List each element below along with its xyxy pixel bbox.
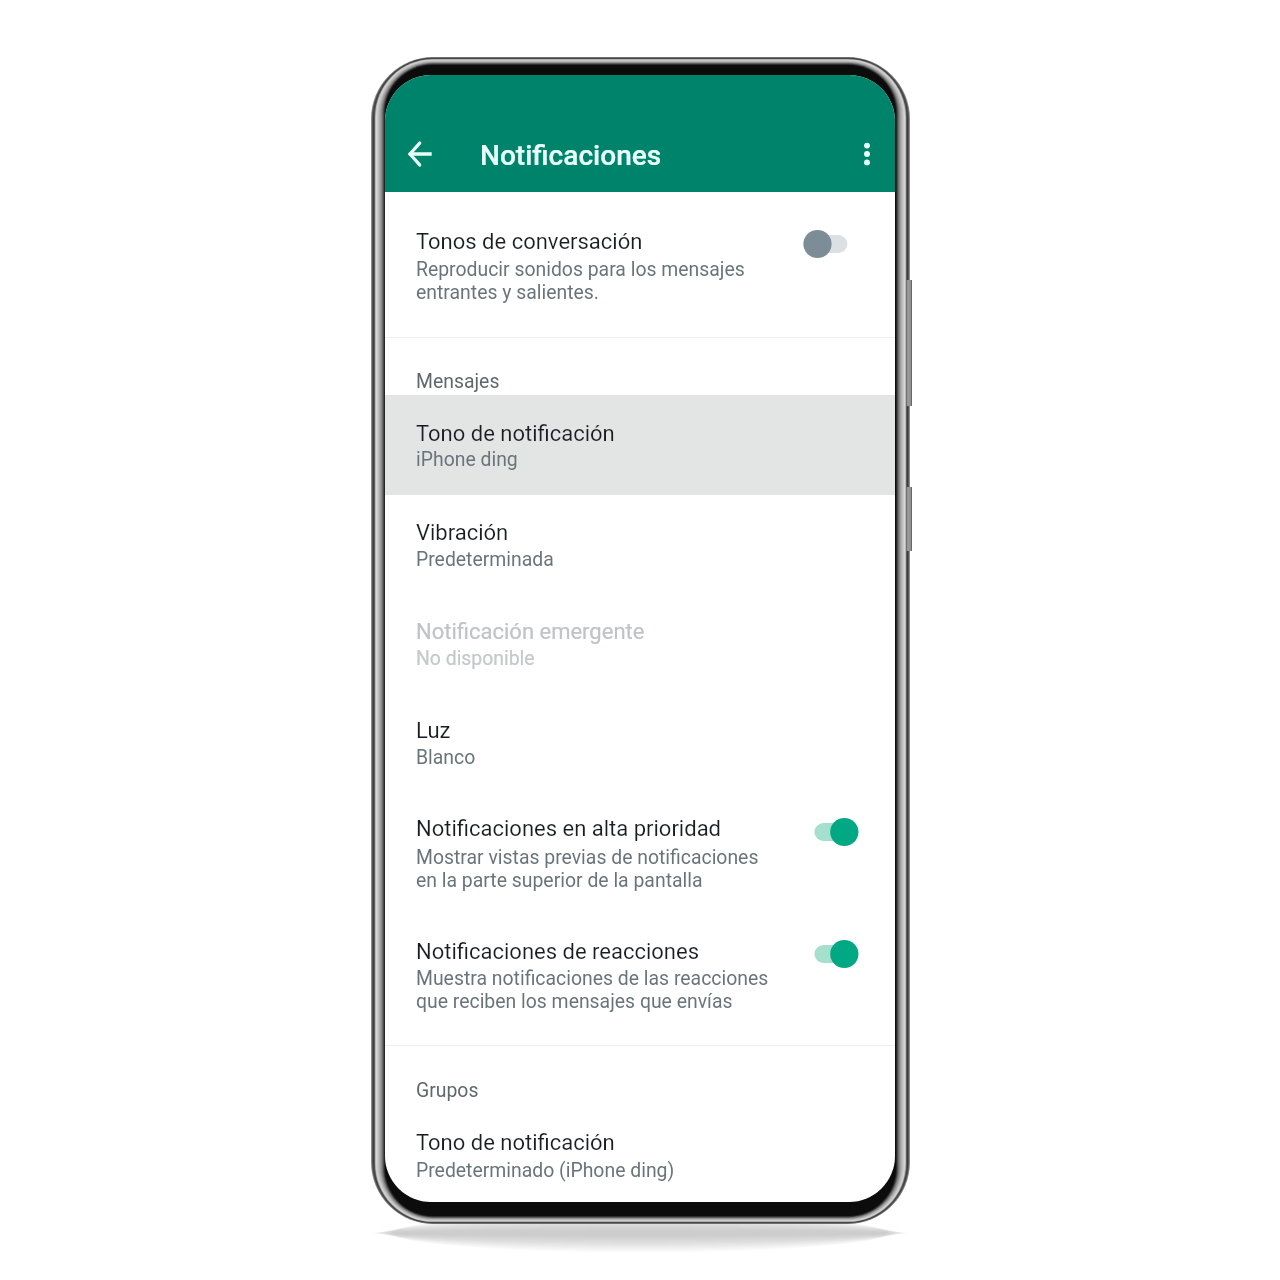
staticText: No disponible: [416, 647, 535, 670]
button[interactable]: Switch off: [789, 222, 863, 266]
button[interactable]: Tonos de conversación: [385, 192, 895, 337]
staticText: Predeterminada: [416, 548, 554, 571]
button[interactable]: More options: [838, 125, 895, 183]
staticText: Mostrar vistas previas de notificaciones…: [416, 846, 759, 892]
staticText: iPhone ding: [416, 448, 518, 471]
button[interactable]: Switch on: [789, 932, 863, 976]
button[interactable]: Switch on: [789, 810, 863, 854]
staticText: Notificaciones en alta prioridad: [416, 816, 722, 842]
staticText: Notificación emergente: [416, 619, 645, 645]
button[interactable]: Notificaciones de reacciones: [385, 910, 895, 1045]
staticText: Luz: [416, 718, 451, 744]
staticText: Blanco: [416, 746, 476, 769]
button[interactable]: Back: [391, 125, 449, 183]
staticText: Muestra notificaciones de las reacciones…: [416, 967, 769, 1013]
staticText: Predeterminado (iPhone ding): [416, 1159, 675, 1182]
button[interactable]: Notificación emergente: [385, 594, 895, 693]
staticText: Vibración: [416, 520, 509, 546]
staticText: Reproducir sonidos para los mensajes ent…: [416, 258, 745, 304]
staticText: Tono de notificación: [416, 1130, 615, 1156]
staticText: Notificaciones: [480, 139, 662, 172]
button[interactable]: Luz: [385, 693, 895, 792]
staticText: Notificaciones de reacciones: [416, 939, 700, 965]
staticText: Tono de notificación: [416, 421, 615, 447]
button[interactable]: Notificaciones en alta prioridad: [385, 792, 895, 910]
button[interactable]: Tono de notificación: [385, 395, 895, 495]
button[interactable]: Tono de notificación: [385, 1104, 895, 1202]
button[interactable]: Vibración: [385, 495, 895, 594]
staticText: Grupos: [416, 1079, 479, 1102]
staticText: Tonos de conversación: [416, 229, 643, 255]
staticText: Mensajes: [416, 370, 500, 393]
